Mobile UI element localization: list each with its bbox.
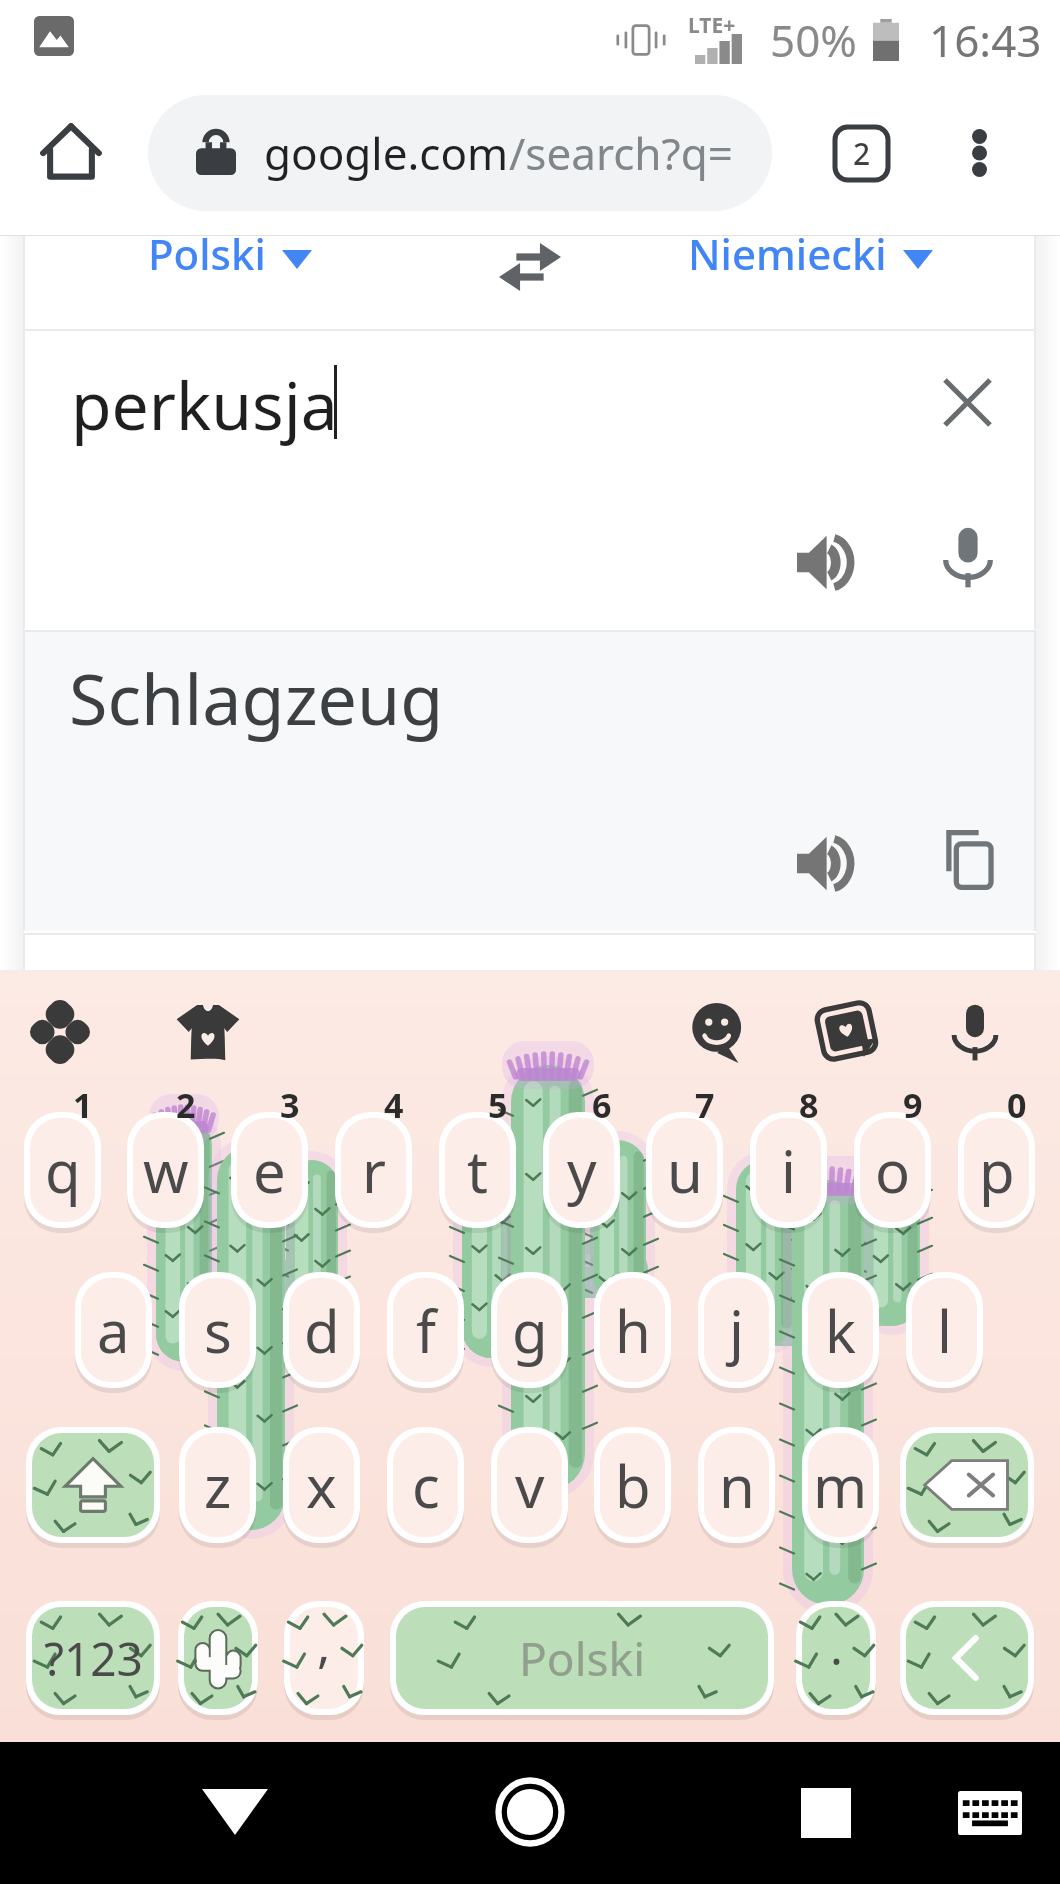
button[interactable]: Themes — [22, 994, 98, 1070]
button[interactable]: Home — [17, 98, 125, 206]
button[interactable]: Listen — [780, 818, 870, 908]
staticText: u — [667, 1131, 703, 1210]
button[interactable]: i — [750, 1112, 827, 1228]
staticText: Schlagzeug — [69, 650, 444, 745]
button[interactable]: t — [439, 1112, 516, 1228]
staticText: x — [306, 1446, 337, 1525]
staticText: z — [204, 1446, 232, 1525]
staticText: w — [143, 1131, 189, 1210]
staticText: b — [615, 1446, 651, 1525]
staticText: perkusja — [71, 359, 338, 449]
button[interactable]: h — [594, 1272, 671, 1388]
button[interactable]: m — [802, 1427, 879, 1543]
button[interactable]: b — [594, 1427, 671, 1543]
button[interactable]: Listen — [780, 517, 870, 607]
staticText: e — [253, 1131, 286, 1210]
button[interactable]: g — [491, 1272, 568, 1388]
button[interactable]: More options — [924, 98, 1034, 208]
button[interactable]: a — [75, 1272, 152, 1388]
staticText: , — [317, 1610, 331, 1678]
staticText: 4 — [384, 1082, 404, 1128]
staticText: j — [729, 1291, 744, 1370]
button[interactable]: p — [958, 1112, 1035, 1228]
staticText: a — [97, 1291, 130, 1370]
button[interactable]: v — [491, 1427, 568, 1543]
button[interactable]: google.com — [148, 95, 772, 211]
button[interactable]: Shift — [26, 1427, 160, 1543]
button[interactable]: s — [179, 1272, 256, 1388]
staticText: 2 — [853, 133, 871, 174]
button[interactable]: u — [646, 1112, 723, 1228]
staticText: 7 — [695, 1082, 715, 1128]
button[interactable]: y — [543, 1112, 620, 1228]
staticText: r — [362, 1131, 386, 1210]
button[interactable]: Back — [185, 1762, 285, 1862]
staticText: 6 — [592, 1082, 612, 1128]
staticText: ?123 — [44, 1627, 143, 1690]
button[interactable]: z — [179, 1427, 256, 1543]
button[interactable]: f — [387, 1272, 464, 1388]
button[interactable]: Home — [478, 1760, 582, 1864]
button[interactable]: , — [284, 1601, 364, 1715]
button[interactable]: k — [802, 1272, 879, 1388]
staticText: k — [825, 1291, 856, 1370]
staticText: o — [875, 1131, 911, 1210]
button[interactable]: w — [127, 1112, 204, 1228]
staticText: Niemiecki — [688, 225, 887, 282]
button[interactable]: Enter — [900, 1601, 1034, 1715]
staticText: q — [45, 1131, 81, 1210]
button[interactable]: ?123 — [26, 1601, 160, 1715]
button[interactable]: Stickers — [168, 992, 248, 1072]
staticText: l — [937, 1291, 952, 1370]
button[interactable]: Switch keyboard — [940, 1763, 1040, 1863]
button[interactable]: Tabs — [806, 98, 916, 208]
staticText: 16:43 — [929, 10, 1042, 70]
button[interactable]: x — [283, 1427, 360, 1543]
button[interactable]: Voice input — [923, 512, 1013, 602]
button[interactable]: r — [335, 1112, 412, 1228]
button[interactable]: c — [387, 1427, 464, 1543]
staticText: d — [304, 1291, 340, 1370]
staticText: 5 — [488, 1082, 508, 1128]
button[interactable]: Polski — [390, 1601, 774, 1715]
staticText: 0 — [1007, 1082, 1027, 1128]
button[interactable]: Copy — [920, 815, 1010, 905]
button[interactable]: j — [698, 1272, 775, 1388]
staticText: t — [467, 1131, 488, 1210]
staticText: . — [830, 1614, 843, 1679]
button[interactable]: . — [796, 1601, 876, 1715]
staticText: v — [515, 1446, 545, 1525]
button[interactable]: Backspace — [900, 1427, 1034, 1543]
staticText: /search?q= — [509, 123, 733, 183]
staticText: 9 — [903, 1082, 923, 1128]
button[interactable]: d — [283, 1272, 360, 1388]
button[interactable]: e — [231, 1112, 308, 1228]
button[interactable]: Niemiecki — [688, 225, 933, 282]
staticText: n — [719, 1446, 755, 1525]
button[interactable]: Emoji — [178, 1601, 258, 1715]
staticText: g — [512, 1291, 548, 1370]
staticText: 3 — [280, 1082, 300, 1128]
staticText: LTE+ — [688, 11, 736, 40]
staticText: Polski — [519, 1627, 645, 1690]
button[interactable]: Voice typing — [935, 992, 1015, 1072]
staticText: 1 — [73, 1082, 93, 1128]
staticText: s — [204, 1291, 232, 1370]
button[interactable]: Emoji — [680, 992, 760, 1072]
staticText: 8 — [799, 1082, 819, 1128]
staticText: c — [412, 1446, 440, 1525]
button[interactable]: n — [698, 1427, 775, 1543]
button[interactable]: Clear — [924, 359, 1010, 445]
button[interactable]: Swap languages — [487, 224, 573, 310]
staticText: y — [567, 1131, 597, 1210]
button[interactable]: q — [24, 1112, 101, 1228]
staticText: google.com — [264, 123, 509, 183]
button[interactable]: Recent apps — [776, 1763, 876, 1863]
button[interactable]: l — [906, 1272, 983, 1388]
staticText: m — [813, 1446, 868, 1525]
button[interactable]: o — [854, 1112, 931, 1228]
button[interactable]: GIF stickers — [808, 992, 888, 1072]
staticText: Polski — [148, 225, 266, 282]
staticText: f — [416, 1291, 436, 1370]
button[interactable]: Polski — [148, 225, 312, 282]
